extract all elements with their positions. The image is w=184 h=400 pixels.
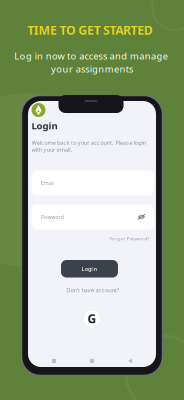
staticText: Log in now to access and manage [14, 50, 168, 62]
button[interactable]: Recent apps [42, 356, 66, 366]
button[interactable]: Continue with Google [84, 310, 100, 326]
staticText: G [87, 310, 96, 327]
button[interactable]: Login [61, 260, 118, 277]
button[interactable]: Back [118, 356, 142, 366]
staticText: with your email. [31, 146, 72, 153]
staticText: TIME TO GET STARTED [27, 22, 153, 38]
staticText: Password [41, 213, 64, 220]
button[interactable]: Password [31, 204, 153, 229]
button[interactable]: Home [80, 356, 104, 366]
staticText: Don't have account? [66, 286, 119, 294]
button[interactable]: Forgot Password? [31, 234, 149, 243]
staticText: Email [41, 179, 54, 186]
staticText: Login [31, 119, 57, 132]
staticText: Welcome back to your account. Please log… [31, 139, 146, 146]
staticText: your assignments [51, 63, 133, 75]
button[interactable]: Email [31, 170, 153, 195]
staticText: Login [82, 265, 97, 272]
staticText: Forgot Password? [110, 236, 149, 241]
button[interactable]: Don't have account? [31, 286, 153, 294]
